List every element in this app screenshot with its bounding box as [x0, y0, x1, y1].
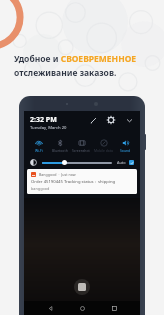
button[interactable]: Collapse	[124, 115, 134, 125]
staticText: Banggood · Just now	[39, 172, 76, 177]
button[interactable]: Bluetooth	[49, 136, 70, 155]
button[interactable]: Home	[76, 302, 88, 314]
button[interactable]: Settings	[106, 115, 116, 125]
staticText: BG	[32, 173, 36, 176]
button[interactable]: Back	[44, 302, 56, 314]
staticText: Screenshot	[72, 148, 90, 153]
staticText: Tuesday, March 20	[30, 125, 67, 131]
staticText: Wi-Fi	[35, 148, 43, 153]
button[interactable]: App	[74, 279, 90, 295]
staticText: Auto	[117, 160, 126, 165]
button[interactable]: Auto	[30, 159, 134, 166]
button[interactable]: Wi-Fi	[28, 136, 49, 155]
staticText: Sound	[120, 148, 131, 153]
staticText: отслеживание заказов.	[14, 67, 117, 79]
staticText: Order 45190445 Tracking status : shippin…	[31, 179, 116, 185]
staticText: Удобное и СВОЕВРЕМЕННОЕ	[14, 53, 137, 65]
button[interactable]: Recents	[108, 302, 120, 314]
button[interactable]: Edit	[88, 115, 98, 125]
button[interactable]: Screenshot	[70, 136, 92, 155]
staticText: 2:32 PM	[30, 115, 57, 125]
staticText: banggood	[31, 186, 50, 191]
staticText: Mobile data	[94, 148, 113, 153]
button[interactable]: Mobile data	[92, 136, 114, 155]
button[interactable]: Sound	[114, 136, 136, 155]
button[interactable]: BG	[27, 169, 137, 194]
staticText: Bluetooth	[52, 148, 68, 153]
